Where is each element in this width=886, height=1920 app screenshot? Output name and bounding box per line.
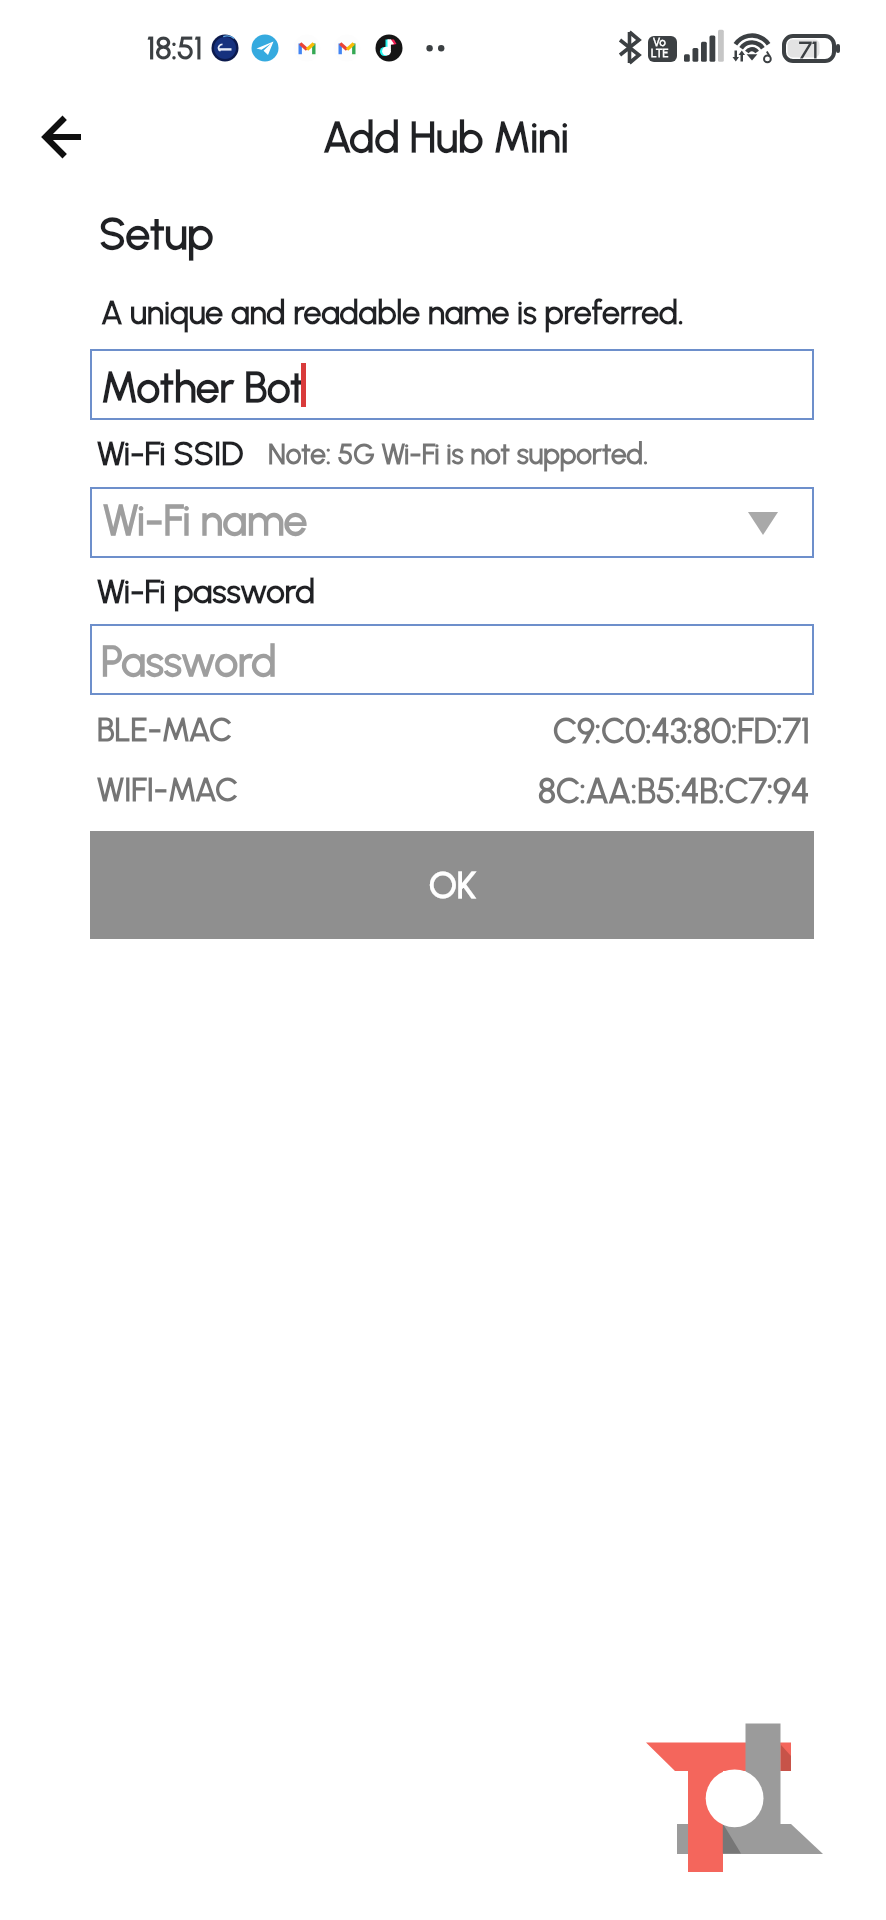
staticText: Password: [101, 636, 277, 686]
button[interactable]: OK: [90, 831, 814, 939]
staticText: Vo: [653, 36, 666, 49]
button[interactable]: Wi-Fi name: [90, 487, 814, 558]
staticText: 71: [799, 35, 819, 64]
staticText: WIFI-MAC: [97, 771, 239, 809]
staticText: BLE-MAC: [97, 711, 232, 749]
button[interactable]: Back: [33, 107, 93, 167]
staticText: 8C:AA:B5:4B:C7:94: [538, 771, 810, 812]
staticText: LTE: [651, 47, 669, 60]
button[interactable]: Mother Bot: [90, 349, 814, 420]
staticText: Wi-Fi name: [103, 495, 308, 545]
staticText: Add Hub Mini: [323, 112, 569, 162]
staticText: 18:51: [147, 30, 203, 67]
staticText: A unique and readable name is preferred.: [101, 294, 684, 332]
staticText: Wi-Fi password: [97, 572, 316, 612]
staticText: Mother Bot: [101, 362, 305, 412]
staticText: Setup: [99, 207, 214, 260]
staticText: C9:C0:43:80:FD:71: [553, 711, 810, 752]
staticText: Note: 5G Wi-Fi is not supported.: [268, 437, 649, 471]
staticText: OK: [429, 864, 476, 907]
button[interactable]: Choose Wi-Fi network: [728, 490, 798, 557]
staticText: Wi-Fi SSID: [97, 434, 244, 474]
button[interactable]: Password: [90, 624, 814, 695]
